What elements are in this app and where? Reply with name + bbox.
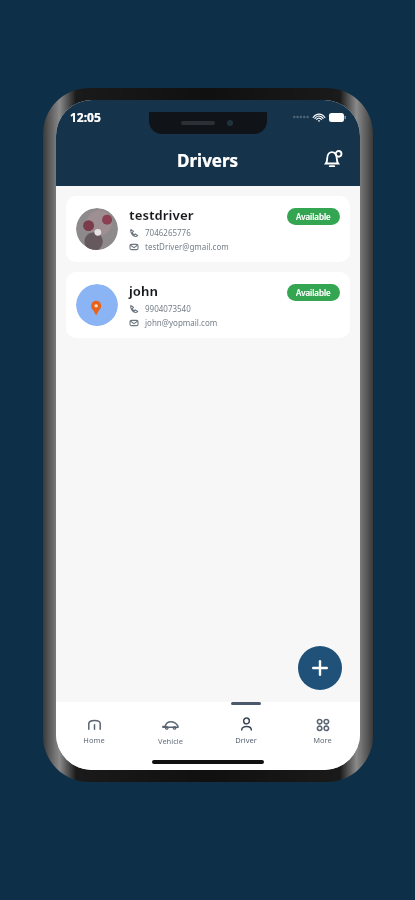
staticText: john — [129, 282, 158, 300]
staticText: testdriver — [129, 206, 194, 224]
staticText: Drivers — [177, 149, 239, 172]
staticText: john@yopmail.com — [145, 317, 218, 328]
button[interactable]: Available — [287, 208, 340, 225]
button[interactable]: More — [284, 702, 360, 754]
button[interactable]: Available — [287, 284, 340, 301]
button[interactable]: Add driver — [298, 646, 342, 690]
staticText: Home — [83, 735, 105, 745]
staticText: More — [313, 735, 332, 745]
staticText: 12:05 — [70, 109, 101, 125]
staticText: Available — [296, 211, 331, 222]
staticText: Vehicle — [158, 736, 183, 746]
staticText: Available — [296, 287, 331, 298]
staticText: testDriver@gmail.com — [145, 241, 229, 252]
button[interactable]: john — [66, 272, 350, 338]
staticText: 7046265776 — [145, 227, 191, 238]
button[interactable]: Vehicle — [132, 702, 208, 754]
button[interactable]: testdriver — [66, 196, 350, 262]
button[interactable]: Home — [56, 702, 132, 754]
button[interactable]: Notifications — [312, 140, 352, 180]
staticText: 9904073540 — [145, 303, 191, 314]
staticText: Driver — [235, 735, 257, 745]
button[interactable]: Driver — [208, 702, 284, 754]
